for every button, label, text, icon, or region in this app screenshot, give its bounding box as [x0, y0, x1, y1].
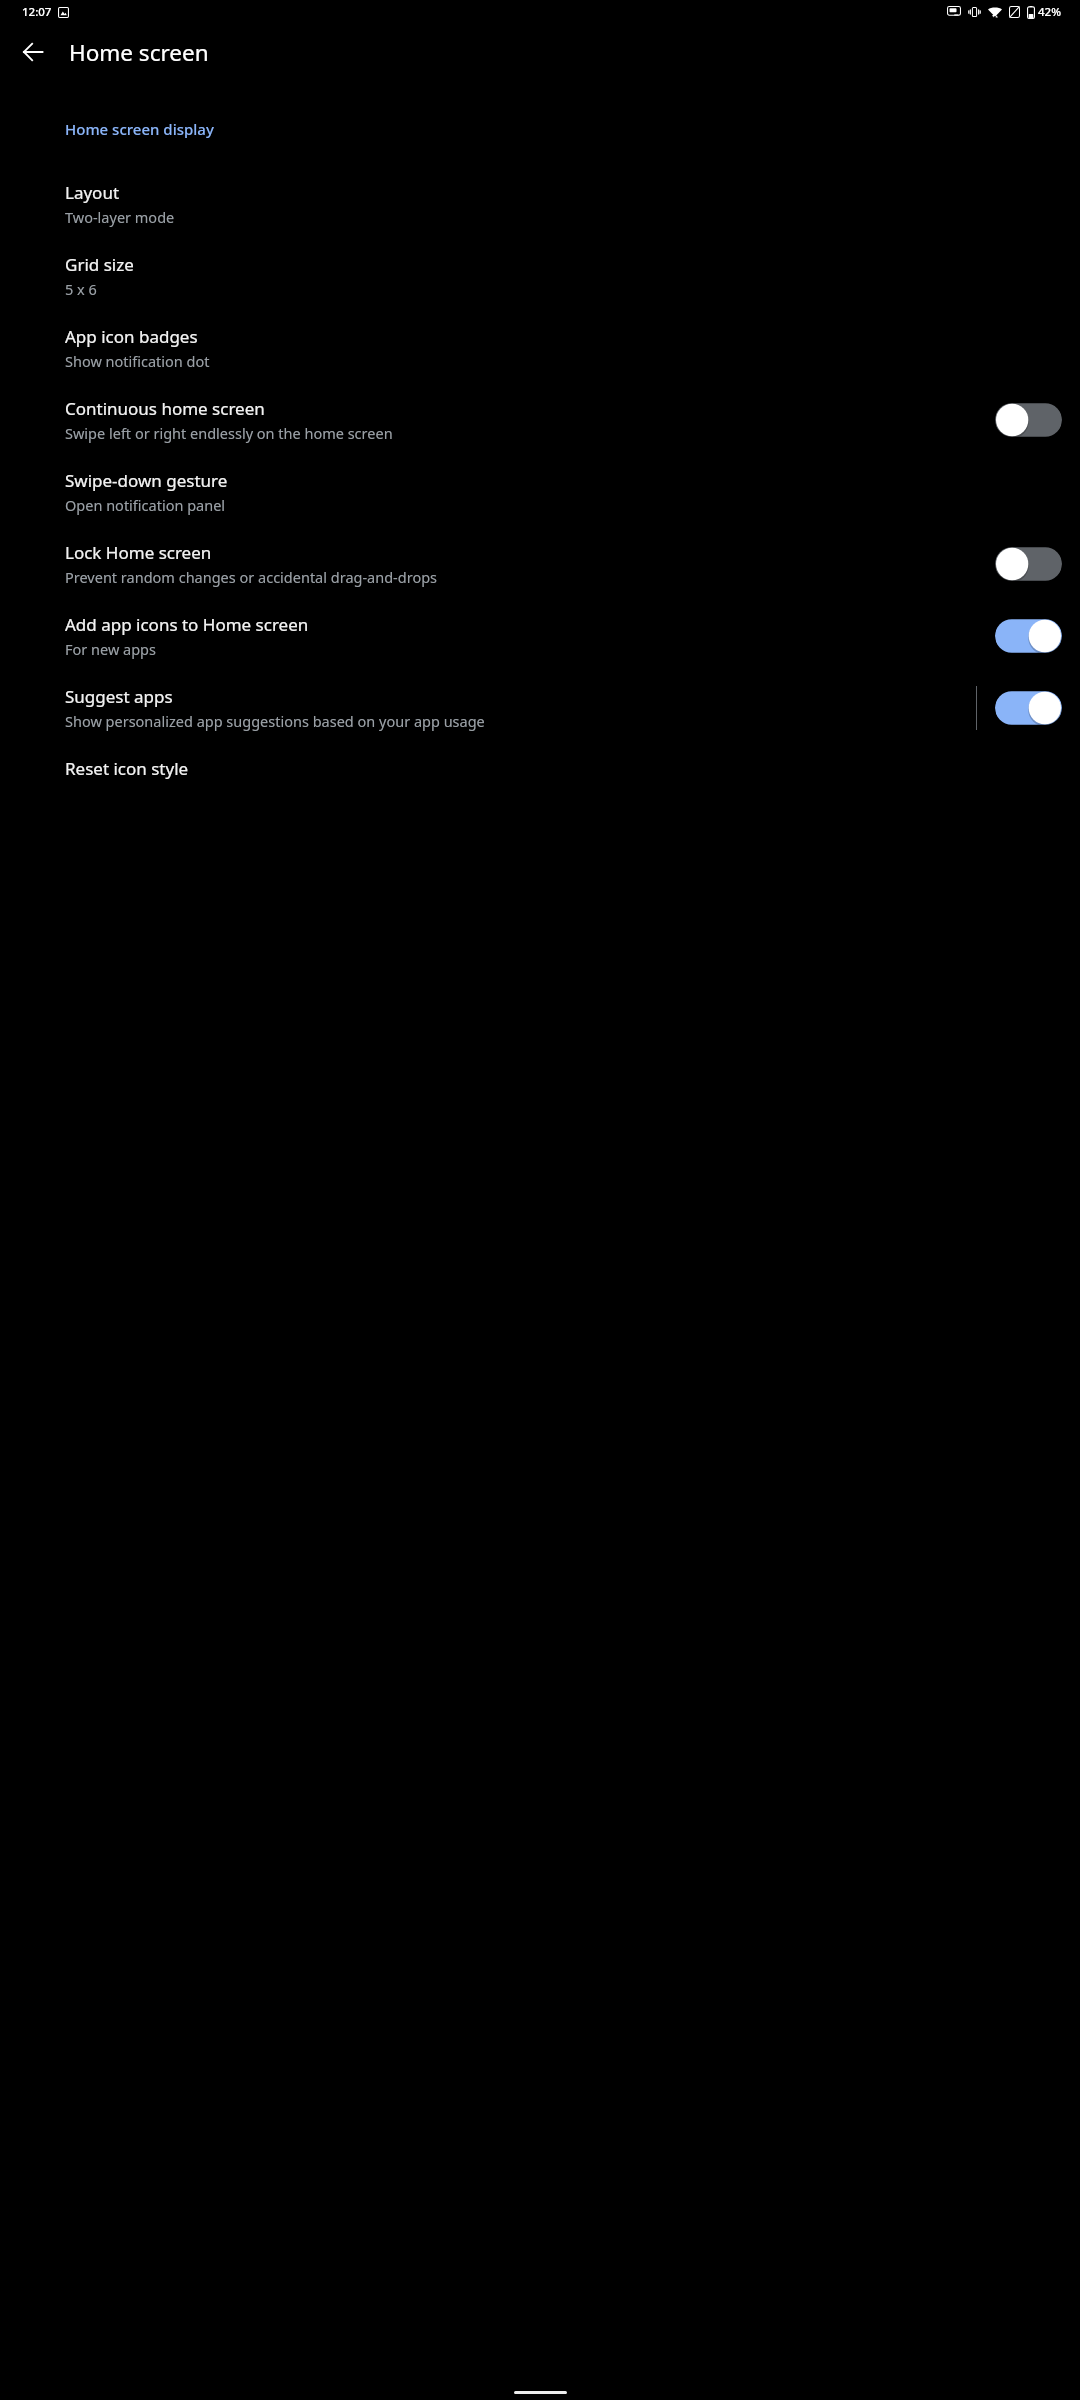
staticText: Swipe-down gesture: [65, 469, 228, 492]
button[interactable]: Suggest apps: [0, 672, 1080, 744]
button[interactable]: Reset icon style: [0, 744, 1080, 793]
staticText: Show notification dot: [65, 351, 210, 371]
button[interactable]: Layout: [0, 168, 1080, 240]
staticText: App icon badges: [65, 325, 198, 348]
staticText: Layout: [65, 181, 120, 204]
button[interactable]: Back: [9, 28, 57, 76]
staticText: 5 x 6: [65, 279, 97, 299]
staticText: Add app icons to Home screen: [65, 613, 309, 636]
button[interactable]: Toggle on: [995, 616, 1062, 656]
button[interactable]: Toggle off: [995, 400, 1062, 440]
button[interactable]: Toggle off: [995, 544, 1062, 584]
staticText: Suggest apps: [65, 685, 173, 708]
staticText: Show personalized app suggestions based …: [65, 711, 485, 731]
staticText: 12:07: [22, 4, 52, 20]
staticText: Swipe left or right endlessly on the hom…: [65, 423, 393, 443]
staticText: Prevent random changes or accidental dra…: [65, 567, 438, 587]
staticText: For new apps: [65, 639, 156, 659]
staticText: 42%: [1038, 4, 1061, 20]
button[interactable]: Grid size: [0, 240, 1080, 312]
staticText: Open notification panel: [65, 495, 226, 515]
button[interactable]: Swipe-down gesture: [0, 456, 1080, 528]
button[interactable]: Add app icons to Home screen: [0, 600, 1080, 672]
button[interactable]: Continuous home screen: [0, 384, 1080, 456]
staticText: Grid size: [65, 253, 134, 276]
button[interactable]: App icon badges: [0, 312, 1080, 384]
staticText: Reset icon style: [65, 757, 189, 780]
button[interactable]: Lock Home screen: [0, 528, 1080, 600]
staticText: Two-layer mode: [65, 207, 175, 227]
staticText: Home screen display: [65, 119, 214, 139]
staticText: Home screen: [69, 37, 209, 68]
button[interactable]: Toggle on: [995, 688, 1062, 728]
staticText: Lock Home screen: [65, 541, 212, 564]
staticText: Continuous home screen: [65, 397, 265, 420]
